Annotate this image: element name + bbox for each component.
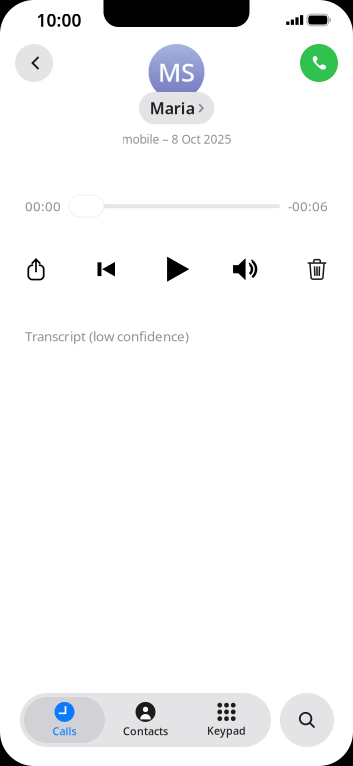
- staticText: 10:00: [36, 8, 81, 31]
- button[interactable]: Share: [14, 252, 58, 286]
- staticText: mobile – 8 Oct 2025: [121, 131, 231, 147]
- button[interactable]: Contacts: [105, 697, 186, 743]
- staticText: 00:00: [25, 197, 61, 215]
- staticText: Calls: [52, 724, 76, 738]
- button[interactable]: Back: [15, 44, 53, 82]
- button[interactable]: Calls: [24, 697, 105, 743]
- button[interactable]: Keypad: [186, 697, 267, 743]
- staticText: Maria: [150, 97, 195, 119]
- button[interactable]: Rewind: [84, 252, 128, 286]
- button[interactable]: Call: [300, 44, 338, 82]
- button[interactable]: Maria: [139, 92, 214, 124]
- staticText: Transcript (low confidence): [25, 327, 189, 345]
- staticText: Keypad: [207, 723, 246, 738]
- staticText: Contacts: [123, 724, 168, 738]
- staticText: MS: [158, 55, 195, 89]
- button[interactable]: Search: [280, 693, 334, 747]
- staticText: -00:06: [288, 197, 328, 215]
- button[interactable]: Delete: [295, 252, 339, 286]
- button[interactable]: Speaker: [225, 252, 269, 286]
- button[interactable]: Play: [154, 252, 198, 286]
